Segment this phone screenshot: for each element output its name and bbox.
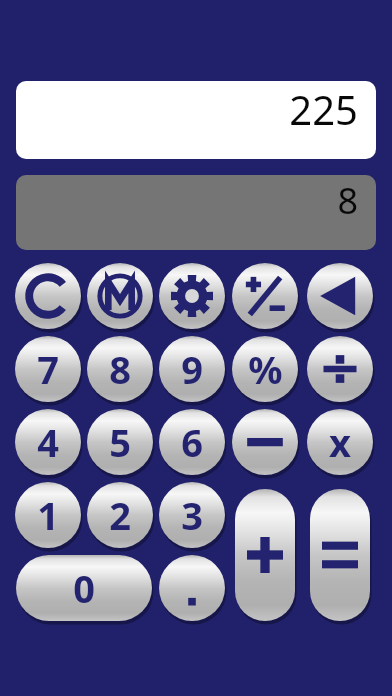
button[interactable]: 6 [159, 409, 225, 475]
button[interactable]: Settings [159, 263, 225, 329]
staticText: 7 [37, 343, 59, 395]
staticText: 2 [109, 489, 131, 541]
button[interactable]: 8 [87, 336, 153, 402]
button[interactable]: Minus [232, 409, 298, 475]
staticText: 225 [289, 82, 358, 136]
button[interactable]: 5 [87, 409, 153, 475]
staticText: 0 [73, 562, 95, 614]
button[interactable]: Equals [310, 489, 370, 621]
button[interactable]: Plus or minus [232, 263, 298, 329]
staticText: 3 [181, 489, 203, 541]
button[interactable]: 9 [159, 336, 225, 402]
button[interactable]: 0 [16, 555, 152, 621]
button[interactable]: x [307, 409, 373, 475]
staticText: 5 [109, 416, 131, 468]
button[interactable]: 7 [15, 336, 81, 402]
staticText: 1 [37, 489, 59, 541]
button[interactable]: Decimal point [159, 555, 225, 621]
staticText: 4 [37, 416, 59, 468]
button[interactable]: Clear [15, 263, 81, 329]
staticText: 8 [109, 343, 131, 395]
button[interactable]: Memory [87, 263, 153, 329]
button[interactable]: 8 [16, 175, 376, 250]
staticText: 6 [181, 416, 203, 468]
staticText: 8 [337, 176, 358, 225]
button[interactable]: % [232, 336, 298, 402]
button[interactable]: Backspace [307, 263, 373, 329]
staticText: % [248, 343, 283, 395]
button[interactable]: 225 [16, 81, 376, 159]
button[interactable]: 4 [15, 409, 81, 475]
button[interactable]: 3 [159, 482, 225, 548]
button[interactable]: 2 [87, 482, 153, 548]
button[interactable]: 1 [15, 482, 81, 548]
staticText: 9 [181, 343, 203, 395]
button[interactable]: Plus [235, 489, 295, 621]
button[interactable]: Divide [307, 336, 373, 402]
staticText: x [329, 416, 351, 468]
